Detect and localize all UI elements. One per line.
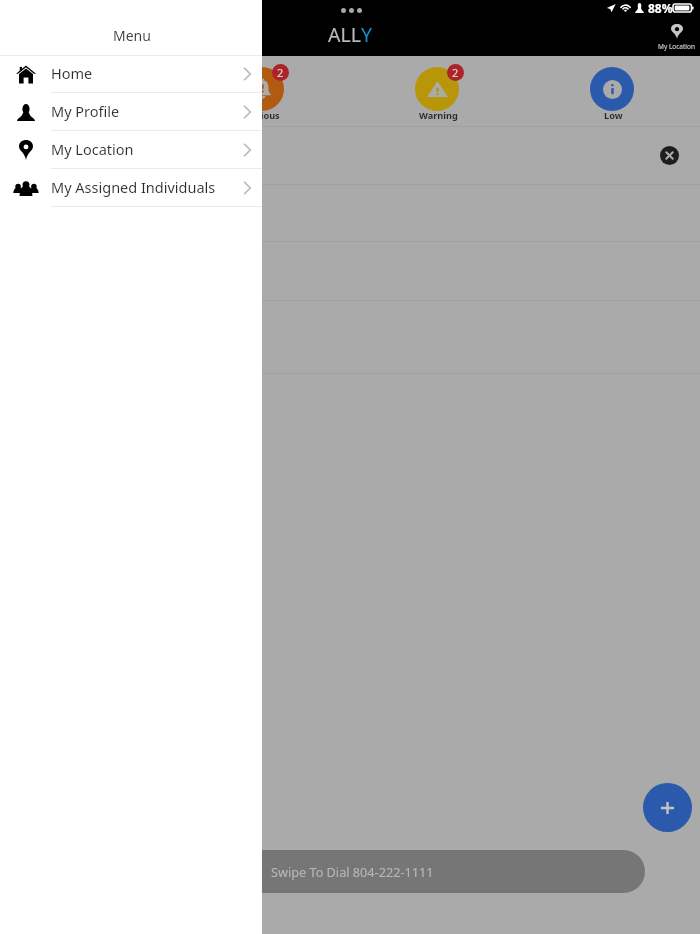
- staticText: My Location: [51, 139, 134, 159]
- button[interactable]: 2: [227, 61, 299, 124]
- staticText: My Assigned Individuals: [51, 177, 216, 197]
- button[interactable]: Home: [0, 55, 262, 93]
- staticText: Home: [51, 63, 93, 83]
- button[interactable]: Swipe To Dial 804-222-1111: [0, 850, 645, 893]
- staticText: 2: [277, 65, 284, 80]
- button[interactable]: My Assigned Individuals: [0, 169, 262, 207]
- button[interactable]: 2: [402, 61, 474, 124]
- staticText: Menu: [113, 26, 151, 45]
- staticText: Critical: [72, 109, 105, 122]
- staticText: 2: [452, 65, 459, 80]
- staticText: Low: [604, 109, 623, 122]
- button[interactable]: Add: [643, 783, 692, 832]
- button[interactable]: Low: [577, 61, 649, 124]
- staticText: 88%: [648, 0, 673, 16]
- staticText: Serious: [246, 109, 280, 122]
- staticText: My Profile: [51, 101, 120, 121]
- button[interactable]: My Profile: [0, 93, 262, 131]
- staticText: ALL: [328, 21, 361, 48]
- button[interactable]: [0, 301, 700, 374]
- button[interactable]: My Location: [0, 131, 262, 169]
- staticText: My Location: [658, 42, 695, 51]
- button[interactable]: Dismiss: [660, 146, 679, 165]
- staticText: Swipe To Dial 804-222-1111: [271, 863, 434, 880]
- staticText: Y: [361, 21, 373, 48]
- button[interactable]: [0, 185, 700, 242]
- button[interactable]: [0, 127, 700, 184]
- button[interactable]: [0, 242, 700, 300]
- button[interactable]: 1: [52, 61, 124, 124]
- staticText: Warning: [419, 109, 458, 122]
- button[interactable]: My Location: [653, 24, 700, 51]
